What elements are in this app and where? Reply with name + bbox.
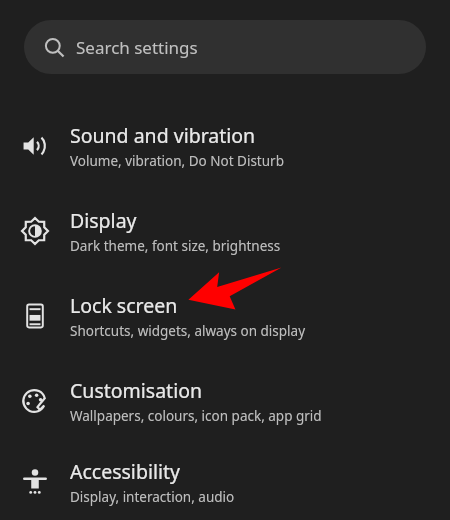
staticText: Search settings	[76, 36, 198, 59]
staticText: Volume, vibration, Do Not Disturb	[70, 152, 284, 170]
button[interactable]: Display	[0, 188, 450, 273]
other: Display	[22, 218, 48, 244]
staticText: Dark theme, font size, brightness	[70, 237, 281, 255]
other: Customisation	[22, 388, 48, 414]
staticText: Display	[70, 207, 137, 234]
staticText: Display, interaction, audio	[70, 488, 235, 506]
staticText: Customisation	[70, 377, 203, 404]
staticText: Accessibility	[70, 458, 180, 485]
button[interactable]: Sound and vibration	[0, 103, 450, 188]
other: Accessibility	[22, 469, 48, 495]
button[interactable]: Customisation	[0, 358, 450, 443]
other: Lock screen	[22, 303, 48, 329]
other: Sound and vibration	[22, 133, 48, 159]
button[interactable]: Search settings	[24, 20, 426, 74]
staticText: Sound and vibration	[70, 122, 256, 149]
button[interactable]: Lock screen	[0, 273, 450, 358]
staticText: Shortcuts, widgets, always on display	[70, 322, 306, 340]
button[interactable]: Accessibility	[0, 443, 450, 520]
staticText: Wallpapers, colours, icon pack, app grid	[70, 407, 322, 425]
staticText: Lock screen	[70, 292, 178, 319]
